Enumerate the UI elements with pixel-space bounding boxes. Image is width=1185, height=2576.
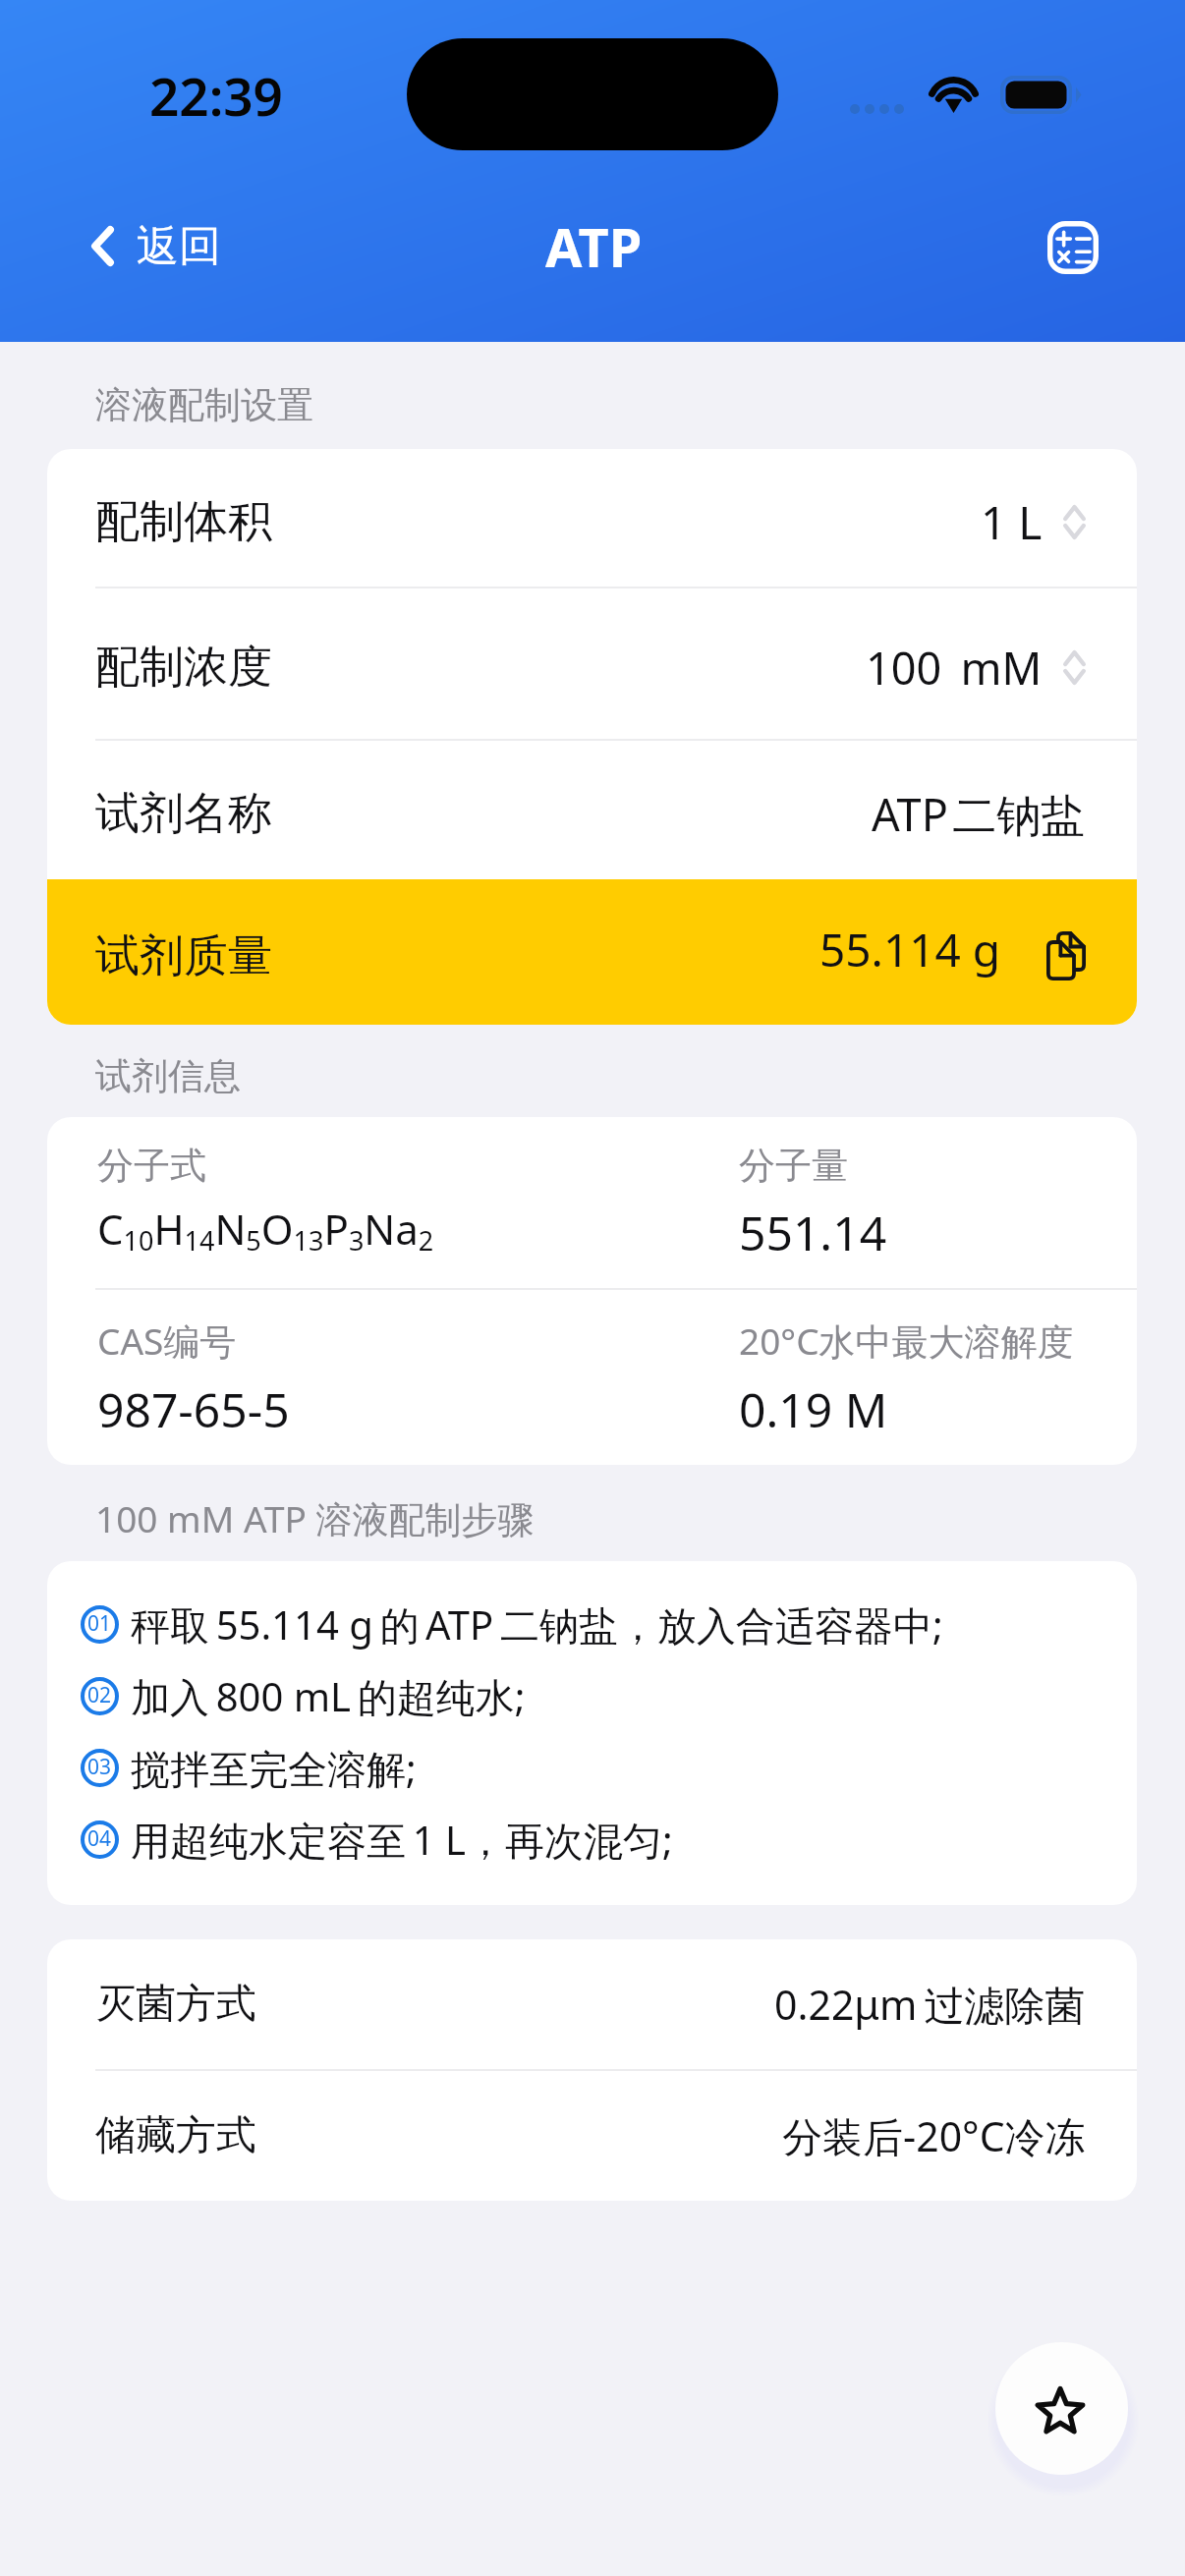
staticText: 01 [87, 1609, 112, 1638]
staticText: 551.14 [739, 1201, 887, 1264]
button[interactable]: Favorite [995, 2342, 1128, 2475]
staticText: 100 mM [866, 638, 1043, 698]
staticText: 0.19 M [739, 1377, 888, 1441]
staticText: 20°C水中最大溶解度 [739, 1316, 1074, 1366]
staticText: C10H14N5O13P3Na2 [97, 1201, 434, 1259]
staticText: 分子式 [97, 1143, 206, 1189]
staticText: 试剂信息 [95, 1053, 241, 1099]
staticText: 搅拌至完全溶解; [131, 1741, 417, 1795]
staticText: CAS编号 [97, 1316, 237, 1366]
button[interactable]: Calculator [1027, 200, 1119, 295]
button[interactable]: 灭菌方式 [47, 1939, 1137, 2069]
staticText: 试剂质量 [95, 928, 272, 984]
staticText: 试剂名称 [95, 786, 272, 842]
staticText: 1 L [981, 491, 1043, 553]
staticText: 秤取 55.114 g 的 ATP 二钠盐，放入合适容器中; [131, 1597, 943, 1652]
staticText: ATP 二钠盐 [872, 784, 1086, 844]
button[interactable]: Copy [1046, 931, 1086, 980]
staticText: 储藏方式 [95, 2110, 256, 2161]
staticText: 02 [87, 1681, 112, 1709]
button[interactable]: 配制浓度 [47, 588, 1137, 739]
staticText: 100 mM ATP 溶液配制步骤 [95, 1493, 535, 1543]
staticText: 溶液配制设置 [95, 382, 313, 428]
staticText: ATP [545, 210, 643, 283]
staticText: 分装后-20°C冷冻 [782, 2108, 1086, 2163]
staticText: 0.22μm 过滤除菌 [774, 1977, 1086, 2032]
button[interactable]: 试剂名称 [47, 741, 1137, 879]
button[interactable]: 配制体积 [47, 449, 1137, 587]
staticText: 22:39 [149, 60, 283, 131]
button[interactable]: 储藏方式 [47, 2071, 1137, 2201]
staticText: 55.114 g [819, 919, 1001, 980]
staticText: 03 [87, 1753, 112, 1781]
staticText: 分子量 [739, 1143, 848, 1189]
staticText: 987-65-5 [97, 1377, 290, 1441]
staticText: 配制浓度 [95, 640, 272, 696]
staticText: 配制体积 [95, 494, 272, 550]
staticText: 用超纯水定容至 1 L，再次混匀; [131, 1813, 673, 1867]
button[interactable]: 试剂质量 [47, 879, 1137, 1025]
staticText: 04 [87, 1824, 112, 1853]
staticText: 加入 800 mL 的超纯水; [131, 1669, 526, 1723]
staticText: 返回 [137, 220, 221, 273]
staticText: 灭菌方式 [95, 1979, 256, 2030]
button[interactable]: 返回 [8, 193, 268, 301]
